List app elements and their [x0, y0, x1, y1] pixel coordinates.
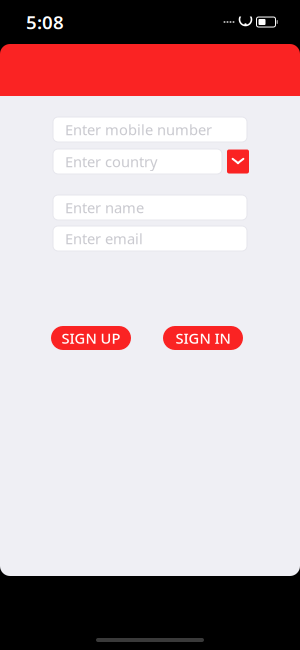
button[interactable]: SIGN UP	[51, 326, 131, 350]
staticText: Enter name	[65, 198, 144, 217]
staticText: Enter mobile number	[65, 120, 212, 139]
button[interactable]: SIGN IN	[163, 326, 243, 350]
button[interactable]: Select country	[227, 149, 249, 173]
staticText: Enter email	[65, 229, 143, 248]
staticText: Enter country	[65, 152, 157, 171]
staticText: 5:08	[26, 10, 64, 34]
staticText: SIGN IN	[175, 328, 230, 348]
staticText: SIGN UP	[61, 328, 120, 348]
